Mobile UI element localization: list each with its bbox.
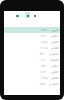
staticText: ١٢:٣٠ [40, 34, 48, 38]
staticText: العصر [51, 46, 59, 50]
staticText: ٠٨:٣٥ [38, 82, 46, 86]
button[interactable]: ٠٧:٤٠ [4, 63, 60, 69]
staticText: اليوم [52, 28, 59, 32]
button[interactable]: App icon [25, 12, 30, 18]
staticText: العصر [51, 76, 59, 80]
staticText: ١٢:٣٠ [41, 28, 49, 32]
button[interactable]: ٠٣:٣٠ [4, 51, 60, 57]
button[interactable]: ٠٦:١٠ [4, 57, 60, 63]
button[interactable]: ١١:٢٠ [4, 69, 60, 75]
staticText: الفجر [51, 64, 59, 68]
button[interactable]: ١٢:١٥ [4, 45, 60, 51]
staticText: ١٢:١٥ [40, 46, 48, 50]
staticText: المغرب [49, 52, 59, 56]
button[interactable]: ٠٨:٣٥ [4, 81, 60, 87]
staticText: ٠٥:٤٥ [40, 40, 48, 44]
button[interactable]: ١٢:٣٠ [4, 27, 60, 33]
staticText: ٠٤:٥٥ [40, 76, 48, 80]
button[interactable]: ٠٤:٥٥ [4, 75, 60, 81]
staticText: الظهر [51, 70, 59, 74]
staticText: ١١:٢٠ [40, 70, 48, 74]
button[interactable]: ٠٥:٤٥ [4, 39, 60, 45]
staticText: المغرب [49, 82, 59, 86]
staticText: العشاء [50, 58, 59, 62]
staticText: ٠٧:٤٠ [40, 64, 48, 68]
staticText: ٠٣:٣٠ [38, 52, 46, 56]
staticText: الظهر [51, 40, 59, 44]
staticText: الفجر [51, 34, 59, 38]
staticText: ٠٦:١٠ [39, 58, 47, 62]
button[interactable]: ١٢:٣٠ [4, 33, 60, 39]
